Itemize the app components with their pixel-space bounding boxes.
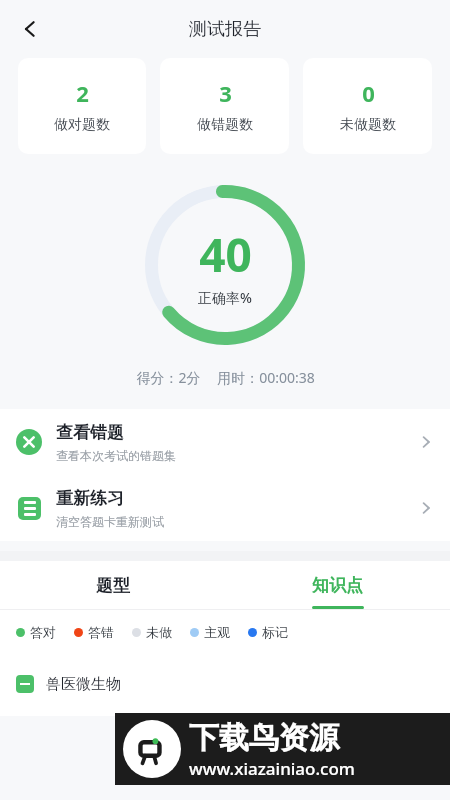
staticText: 查看本次考试的错题集 — [56, 448, 176, 463]
staticText: 2 — [76, 78, 89, 108]
staticText: 答错 — [88, 624, 114, 640]
staticText: 用时：00:00:38 — [217, 368, 315, 387]
staticText: 答对 — [30, 624, 56, 640]
staticText: 3 — [219, 78, 232, 108]
button[interactable]: 3 — [160, 58, 289, 154]
button[interactable]: 2 — [18, 58, 146, 154]
staticText: 下载鸟资源 — [189, 719, 339, 757]
staticText: 得分：2分 — [136, 368, 201, 387]
staticText: 0 — [362, 78, 375, 108]
staticText: 做对题数 — [54, 116, 110, 134]
staticText: 做错题数 — [197, 116, 253, 134]
staticText: 正确率% — [198, 288, 252, 307]
button[interactable]: 题型 — [0, 561, 225, 609]
staticText: www.xiazainiao.com — [189, 757, 355, 780]
button[interactable]: 查看错题 — [0, 409, 450, 475]
staticText: 40 — [199, 223, 252, 286]
button[interactable]: 重新练习 — [0, 475, 450, 541]
staticText: 重新练习 — [56, 488, 124, 509]
staticText: 标记 — [262, 624, 288, 640]
staticText: 题型 — [96, 575, 130, 596]
staticText: 兽医微生物 — [46, 675, 121, 694]
staticText: 测试报告 — [189, 18, 261, 41]
staticText: 主观 — [204, 624, 230, 640]
staticText: 清空答题卡重新测试 — [56, 514, 164, 529]
button[interactable]: 知识点 — [225, 561, 450, 609]
staticText: 查看错题 — [56, 422, 124, 443]
staticText: 知识点 — [312, 575, 363, 596]
staticText: 未做 — [146, 624, 172, 640]
button[interactable]: 0 — [303, 58, 432, 154]
button[interactable]: Back — [10, 9, 50, 49]
staticText: 未做题数 — [340, 116, 396, 134]
button[interactable]: 兽医微生物 — [0, 652, 450, 716]
